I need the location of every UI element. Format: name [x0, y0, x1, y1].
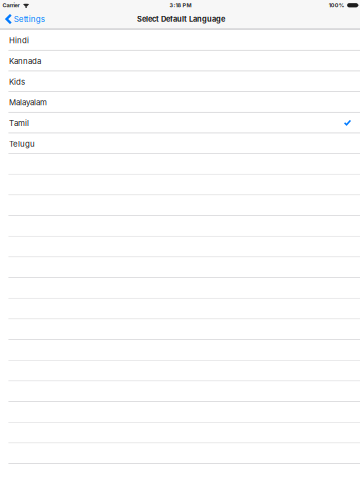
staticText: 3:18 PM [169, 2, 191, 8]
button[interactable]: Kids [0, 71, 360, 92]
button[interactable]: Kannada [0, 51, 360, 71]
staticText: Malayalam [9, 98, 47, 107]
staticText: 100% [329, 2, 345, 8]
staticText: Select Default Language [137, 14, 225, 23]
button[interactable]: Telugu [0, 133, 360, 154]
button[interactable]: Settings [0, 10, 50, 28]
staticText: Kannada [9, 56, 41, 66]
button[interactable]: Malayalam [0, 92, 360, 113]
staticText: Tamil [9, 118, 29, 128]
staticText: Carrier [3, 2, 20, 8]
staticText: Settings [14, 14, 45, 24]
button[interactable]: Tamil [0, 113, 360, 133]
staticText: Telugu [9, 139, 35, 148]
staticText: Hindi [9, 36, 29, 45]
button[interactable]: Hindi [0, 30, 360, 51]
staticText: Kids [9, 77, 25, 86]
